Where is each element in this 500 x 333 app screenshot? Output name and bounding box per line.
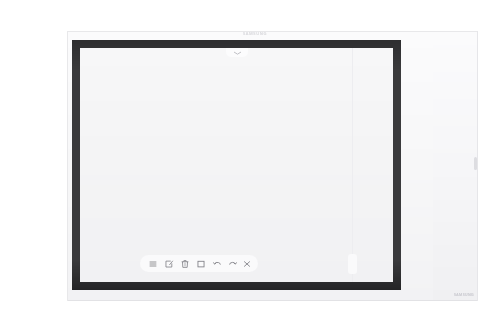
- staticText: SAMSUNG: [447, 292, 481, 297]
- button[interactable]: Frame: [195, 258, 206, 269]
- staticText: SAMSUNG: [228, 31, 282, 36]
- button[interactable]: Redo: [227, 258, 238, 269]
- button[interactable]: Menu: [147, 258, 158, 269]
- button[interactable]: Power button: [474, 157, 477, 170]
- button[interactable]: Delete: [179, 258, 190, 269]
- button[interactable]: New note: [163, 258, 174, 269]
- button[interactable]: Undo: [211, 258, 222, 269]
- button[interactable]: Open menu: [226, 48, 248, 57]
- button[interactable]: Close: [243, 258, 251, 269]
